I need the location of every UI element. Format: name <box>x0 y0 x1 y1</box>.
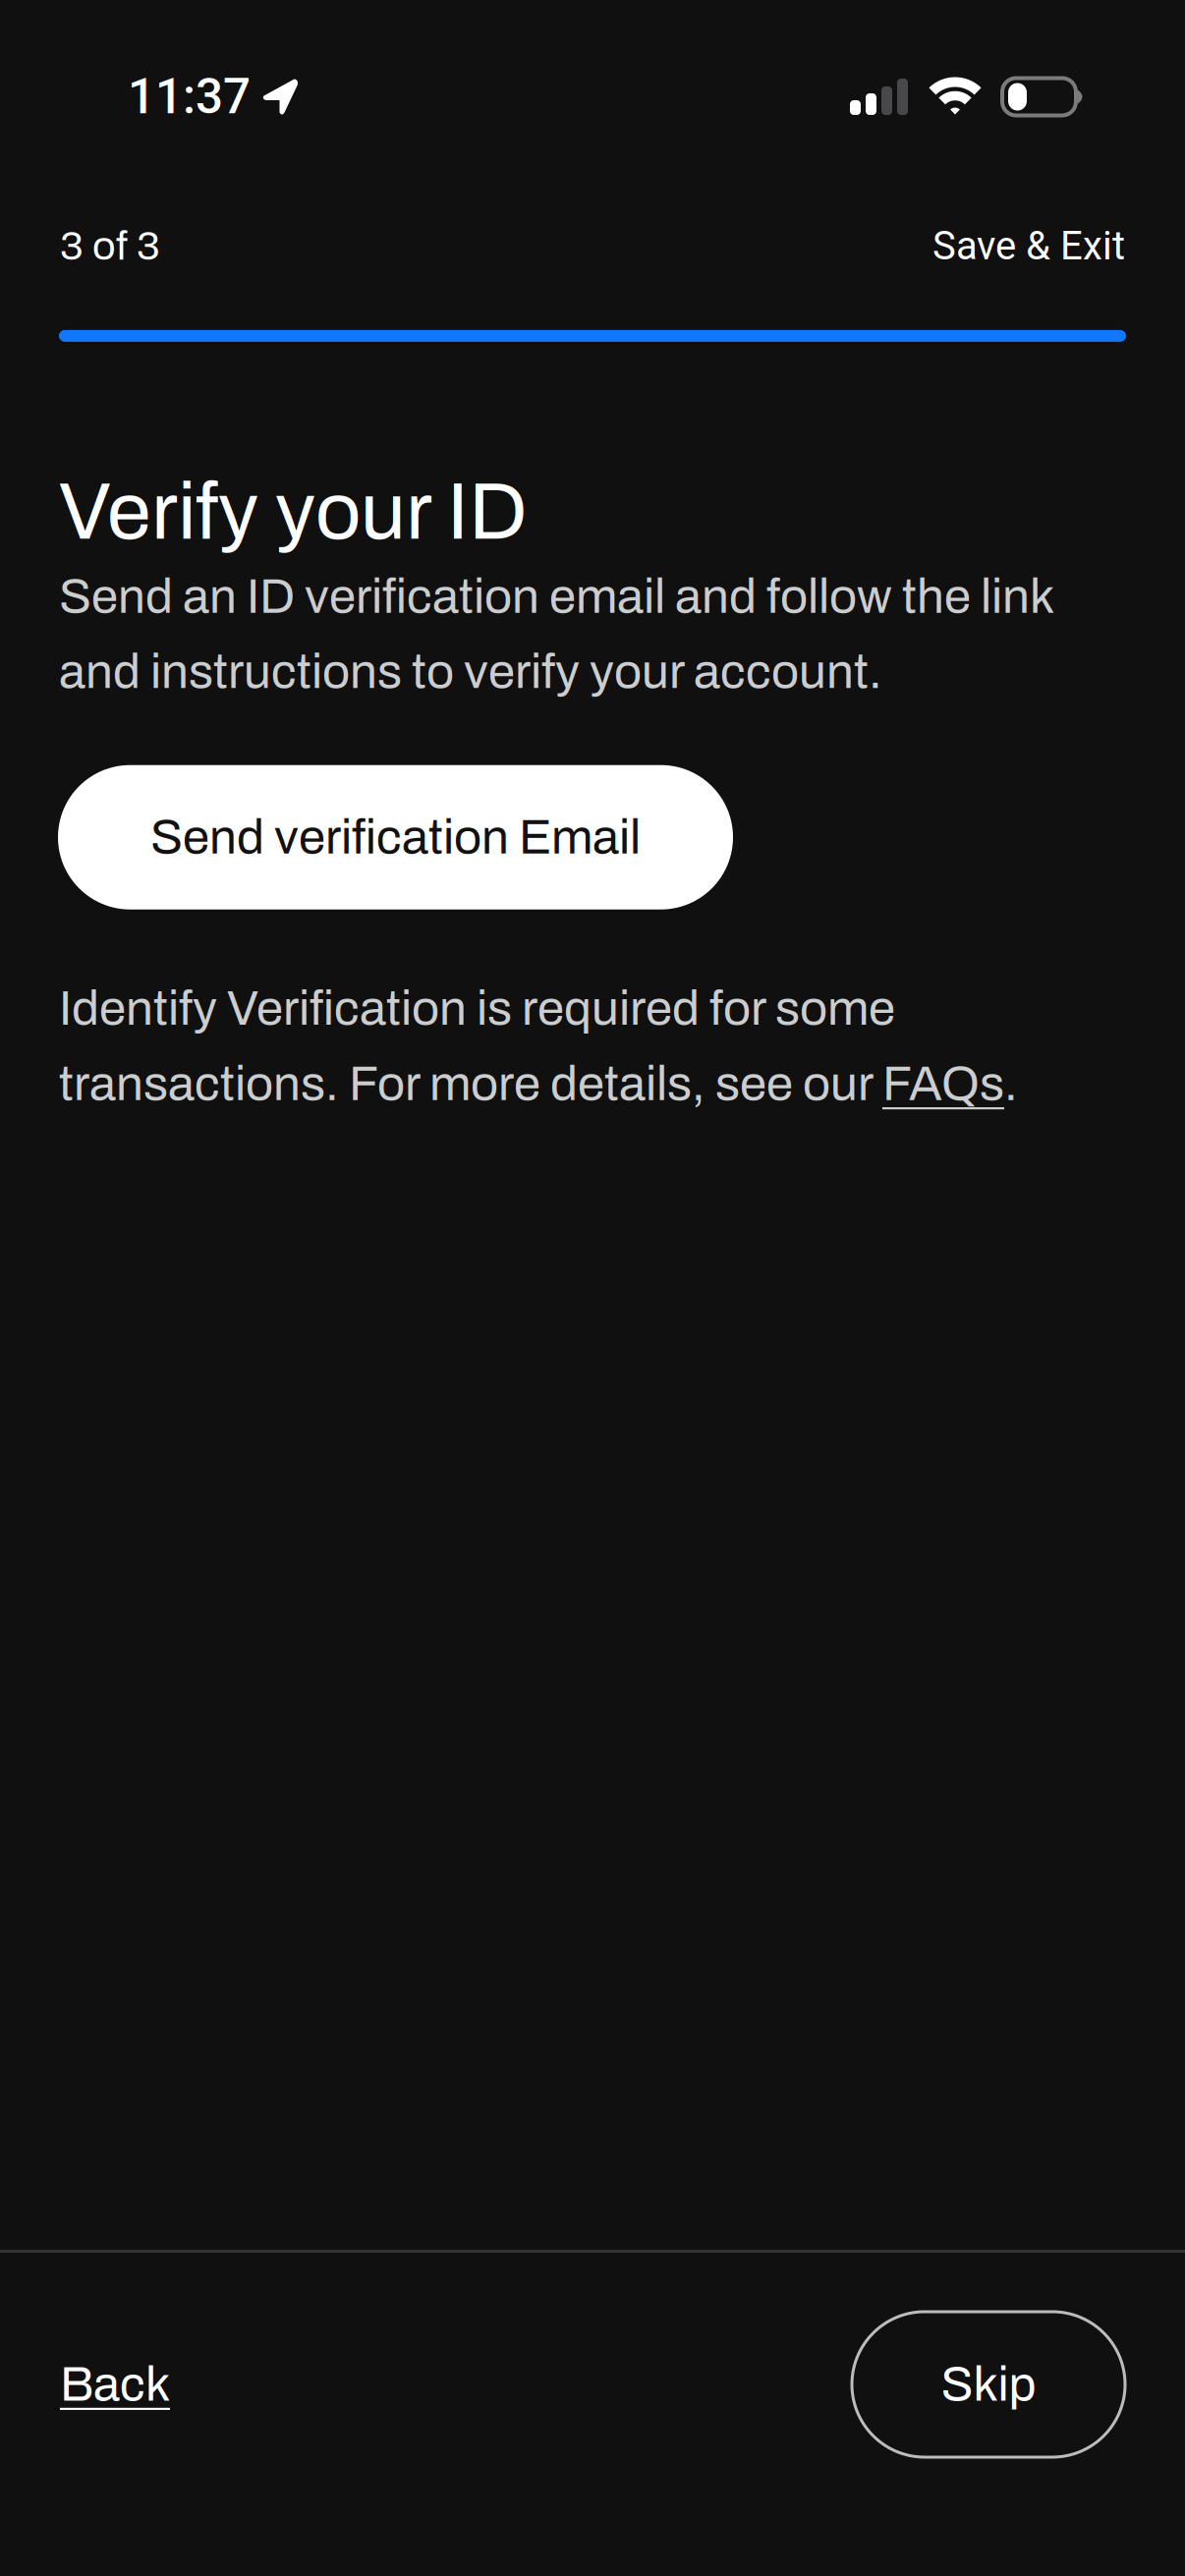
staticText: Back <box>60 2358 170 2411</box>
button[interactable]: Send verification Email <box>58 765 733 909</box>
staticText: Skip <box>941 2358 1036 2411</box>
button[interactable]: Save & Exit <box>932 223 1125 269</box>
staticText: Verify your ID <box>59 469 528 555</box>
staticText: Send verification Email <box>150 811 641 864</box>
button[interactable]: Skip <box>852 2312 1125 2457</box>
staticText: Identify Verification is required for so… <box>59 982 1018 1110</box>
staticText: Send an ID verification email and follow… <box>59 570 1053 698</box>
staticText: 11:37 <box>128 68 251 125</box>
staticText: 3 of 3 <box>60 224 160 268</box>
staticText: Save & Exit <box>932 223 1125 269</box>
button[interactable]: Back <box>60 2358 170 2411</box>
